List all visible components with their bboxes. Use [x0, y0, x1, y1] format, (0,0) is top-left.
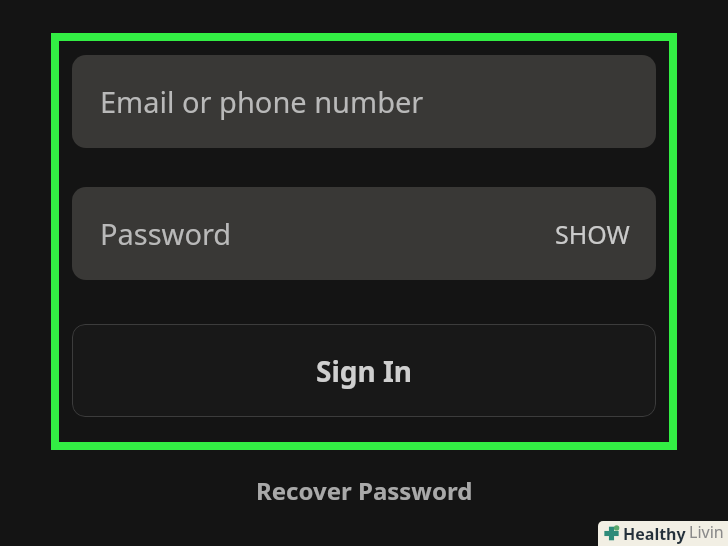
staticText: Password	[100, 214, 232, 253]
button[interactable]: Password	[72, 187, 656, 280]
staticText: Sign In	[316, 352, 413, 390]
staticText: Living	[689, 521, 728, 546]
staticText: Recover Password	[256, 474, 473, 507]
button[interactable]: Sign In	[72, 324, 656, 417]
staticText: Email or phone number	[100, 82, 424, 121]
staticText: Healthy	[623, 523, 686, 545]
button[interactable]: SHOW	[553, 211, 632, 257]
staticText: SHOW	[555, 217, 630, 251]
button[interactable]: Recover Password	[246, 470, 483, 511]
button[interactable]: Email or phone number	[72, 55, 656, 148]
